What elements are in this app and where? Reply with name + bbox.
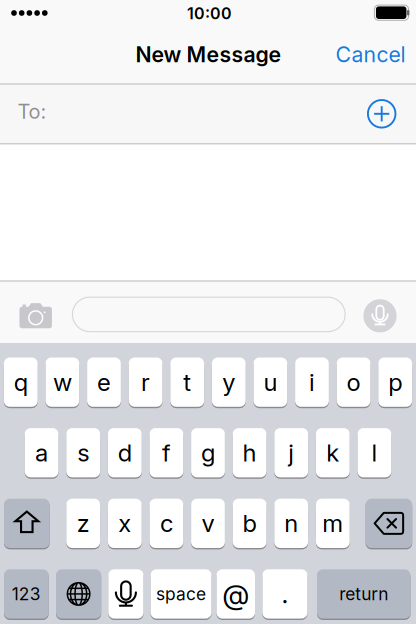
staticText: n bbox=[284, 509, 298, 537]
button[interactable]: x bbox=[108, 499, 142, 548]
staticText: w bbox=[53, 368, 72, 396]
button[interactable]: . bbox=[262, 569, 307, 619]
staticText: return bbox=[339, 584, 388, 604]
staticText: j bbox=[288, 439, 294, 467]
staticText: i bbox=[309, 368, 315, 396]
staticText: l bbox=[371, 439, 377, 467]
button[interactable]: Shift bbox=[4, 499, 50, 548]
staticText: New Message bbox=[135, 42, 281, 67]
button[interactable]: b bbox=[233, 499, 266, 548]
button[interactable]: j bbox=[274, 428, 308, 477]
staticText: h bbox=[243, 439, 257, 467]
staticText: 123 bbox=[12, 584, 41, 604]
staticText: t bbox=[183, 368, 191, 396]
button[interactable]: w bbox=[45, 357, 79, 407]
staticText: f bbox=[162, 439, 171, 467]
button[interactable]: Camera bbox=[19, 302, 52, 328]
staticText: r bbox=[141, 368, 150, 396]
staticText: u bbox=[263, 368, 277, 396]
staticText: c bbox=[160, 509, 173, 537]
staticText: k bbox=[326, 439, 339, 467]
staticText: Cancel bbox=[335, 42, 405, 67]
staticText: o bbox=[347, 368, 361, 396]
button[interactable]: 123 bbox=[4, 569, 49, 619]
button[interactable]: Delete bbox=[366, 499, 412, 548]
staticText: e bbox=[97, 368, 111, 396]
staticText: d bbox=[118, 439, 132, 467]
button[interactable]: t bbox=[170, 357, 204, 407]
button[interactable]: Dictation bbox=[108, 569, 143, 619]
button[interactable]: space bbox=[151, 569, 211, 619]
button[interactable]: l bbox=[357, 428, 391, 477]
staticText: q bbox=[14, 368, 28, 396]
staticText: 10:00 bbox=[187, 4, 232, 23]
staticText: b bbox=[243, 509, 257, 537]
button[interactable]: Cancel bbox=[335, 42, 405, 67]
staticText: z bbox=[77, 509, 90, 537]
staticText: x bbox=[118, 509, 131, 537]
staticText: p bbox=[388, 368, 402, 396]
button[interactable]: g bbox=[191, 428, 225, 477]
staticText: a bbox=[35, 439, 48, 467]
button[interactable]: z bbox=[66, 499, 100, 548]
staticText: v bbox=[201, 509, 214, 537]
staticText: y bbox=[222, 368, 235, 396]
button[interactable]: p bbox=[378, 357, 412, 407]
button[interactable]: y bbox=[212, 357, 246, 407]
button[interactable]: v bbox=[191, 499, 225, 548]
button[interactable]: s bbox=[66, 428, 100, 477]
button[interactable]: k bbox=[316, 428, 350, 477]
staticText: . bbox=[281, 579, 288, 609]
staticText: g bbox=[201, 439, 215, 467]
button[interactable]: a bbox=[25, 428, 58, 477]
staticText: @ bbox=[222, 577, 249, 610]
button[interactable]: r bbox=[129, 357, 162, 407]
button[interactable]: Add Contact bbox=[368, 100, 395, 128]
button[interactable]: h bbox=[233, 428, 266, 477]
staticText: m bbox=[322, 509, 343, 537]
button[interactable]: d bbox=[108, 428, 142, 477]
staticText: s bbox=[77, 439, 89, 467]
button[interactable]: f bbox=[149, 428, 183, 477]
button[interactable]: e bbox=[87, 357, 121, 407]
button[interactable]: q bbox=[4, 357, 38, 407]
button[interactable]: Record Audio bbox=[363, 299, 397, 332]
button[interactable]: n bbox=[274, 499, 308, 548]
staticText: To: bbox=[17, 100, 46, 123]
button[interactable]: Message field bbox=[72, 297, 345, 332]
button[interactable]: u bbox=[253, 357, 287, 407]
staticText: space bbox=[156, 584, 206, 604]
button[interactable]: o bbox=[337, 357, 370, 407]
button[interactable]: return bbox=[317, 569, 410, 619]
button[interactable]: i bbox=[295, 357, 329, 407]
button[interactable]: Next Keyboard bbox=[56, 569, 101, 619]
button[interactable]: c bbox=[149, 499, 183, 548]
button[interactable]: m bbox=[316, 499, 350, 548]
button[interactable]: @ bbox=[216, 569, 255, 619]
